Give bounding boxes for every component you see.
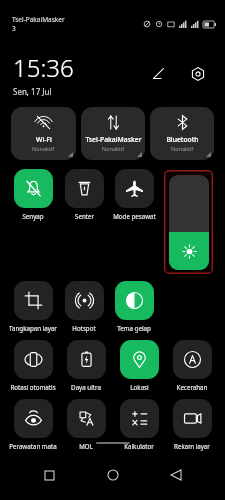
- staticText: Daya ultra: [71, 383, 101, 391]
- button[interactable]: MOL: [61, 399, 111, 450]
- staticText: Bluetooth: [166, 135, 199, 144]
- button[interactable]: Rotasi otomatis: [8, 340, 58, 391]
- staticText: 3: [12, 24, 16, 33]
- button[interactable]: Home: [98, 460, 128, 490]
- button[interactable]: Recents: [34, 460, 64, 490]
- staticText: Wi-Fi: [36, 135, 52, 144]
- button[interactable]: Edit: [147, 63, 169, 85]
- button[interactable]: Senyap: [8, 169, 58, 220]
- button[interactable]: Kalkulator: [114, 399, 164, 450]
- staticText: Hotspot: [72, 324, 96, 332]
- button[interactable]: Senter: [59, 169, 109, 220]
- staticText: Tema gelap: [117, 324, 151, 332]
- staticText: Lokasi: [130, 383, 149, 391]
- button[interactable]: Back: [161, 460, 191, 490]
- button[interactable]: Kecerahan adaptif: [167, 340, 217, 391]
- staticText: Nonaktif: [102, 145, 125, 152]
- button[interactable]: Lokasi: [114, 340, 164, 391]
- button[interactable]: Daya ultra: [61, 340, 111, 391]
- button[interactable]: Tangkapan layar: [8, 281, 58, 332]
- staticText: Nonaktif: [171, 145, 194, 152]
- staticText: Rekam layar: [174, 442, 210, 450]
- button[interactable]: Wi-Fi: [11, 107, 76, 160]
- staticText: 15:36: [13, 51, 74, 84]
- staticText: Kecerahan adaptif: [167, 383, 217, 391]
- button[interactable]: Bluetooth: [150, 107, 214, 160]
- button[interactable]: Settings: [187, 63, 209, 85]
- staticText: Nonaktif: [32, 145, 55, 152]
- staticText: Sen, 17 Jul: [13, 86, 52, 97]
- button[interactable]: Rekam layar: [167, 399, 217, 450]
- button[interactable]: Tsel-PakaiMasker: [81, 107, 145, 160]
- button[interactable]: Hotspot: [59, 281, 109, 332]
- staticText: Tsel-PakaiMasker: [12, 15, 65, 24]
- staticText: Rotasi otomatis: [10, 383, 56, 391]
- staticText: Tangkapan layar: [9, 324, 57, 332]
- staticText: Tsel-PakaiMasker: [85, 135, 142, 144]
- button[interactable]: Mode pesawat: [109, 169, 159, 220]
- button[interactable]: Brightness: [164, 170, 213, 274]
- staticText: Perawatan mata: [9, 442, 57, 450]
- staticText: Kalkulator: [124, 442, 154, 450]
- button[interactable]: Perawatan mata: [8, 399, 58, 450]
- button[interactable]: Tema gelap: [109, 281, 159, 332]
- staticText: Senter: [75, 212, 94, 220]
- staticText: Mode pesawat: [113, 212, 156, 220]
- staticText: MOL: [79, 442, 93, 450]
- staticText: Senyap: [22, 212, 44, 220]
